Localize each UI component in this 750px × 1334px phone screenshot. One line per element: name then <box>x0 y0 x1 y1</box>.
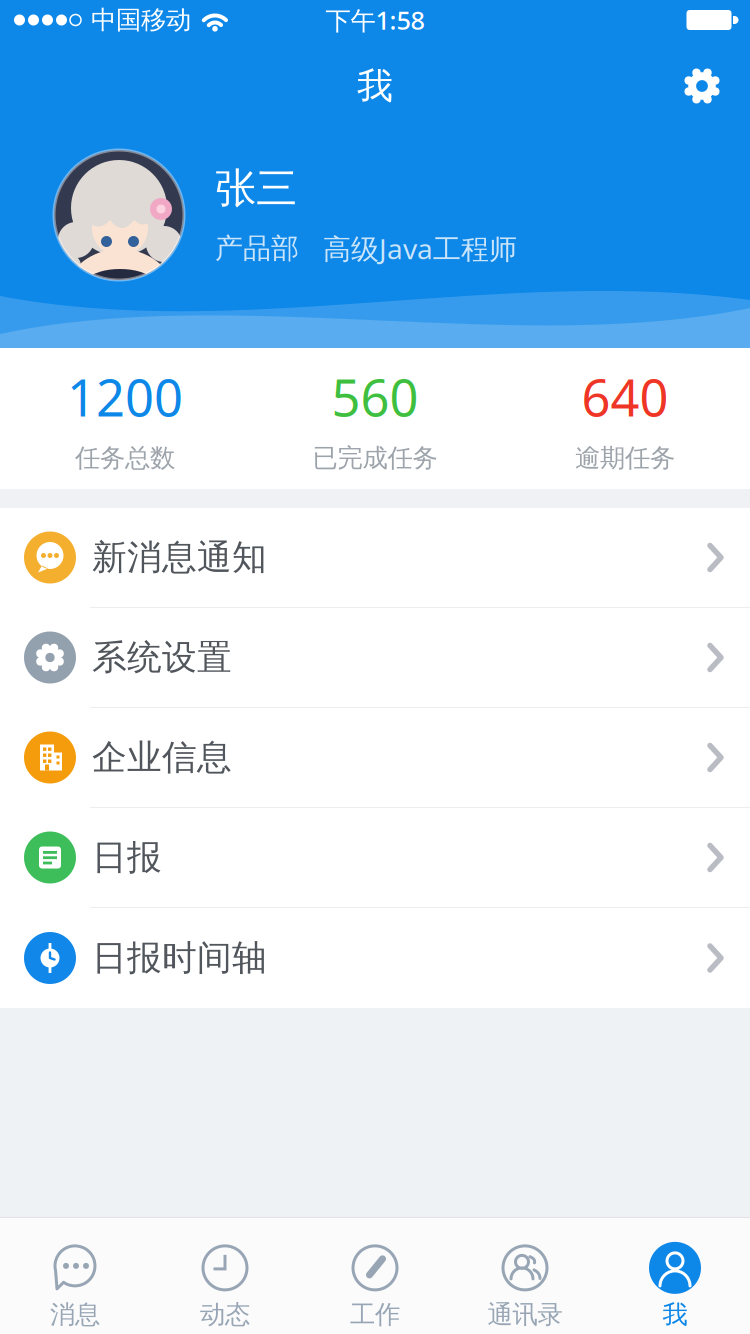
button[interactable]: 我 <box>600 1242 750 1330</box>
staticText: 中国移动 <box>91 4 191 35</box>
button[interactable]: 日报 <box>0 808 750 908</box>
staticText: 消息 <box>50 1299 100 1330</box>
staticText: 逾期任务 <box>575 443 675 474</box>
button[interactable]: 动态 <box>150 1242 300 1330</box>
staticText: 高级Java工程师 <box>323 230 517 267</box>
staticText: 新消息通知 <box>92 536 267 579</box>
staticText: 通讯录 <box>487 1299 562 1330</box>
staticText: 任务总数 <box>75 443 175 474</box>
staticText: 张三 <box>215 163 297 214</box>
button[interactable]: 设置 <box>683 67 721 105</box>
button[interactable]: 消息 <box>0 1242 150 1330</box>
staticText: 我 <box>662 1299 687 1330</box>
staticText: 系统设置 <box>92 636 232 679</box>
staticText: 640 <box>581 363 668 431</box>
button[interactable]: 系统设置 <box>0 608 750 708</box>
button[interactable]: 通讯录 <box>450 1242 600 1330</box>
staticText: 工作 <box>350 1299 400 1330</box>
staticText: 我 <box>357 64 393 108</box>
staticText: 日报 <box>92 836 162 879</box>
button[interactable]: 新消息通知 <box>0 508 750 608</box>
staticText: 产品部 <box>215 231 299 266</box>
staticText: 1200 <box>67 363 183 431</box>
staticText: 已完成任务 <box>312 443 437 474</box>
button[interactable]: 工作 <box>300 1242 450 1330</box>
staticText: 560 <box>331 363 418 431</box>
button[interactable]: 企业信息 <box>0 708 750 808</box>
button[interactable]: 日报时间轴 <box>0 908 750 1008</box>
staticText: 企业信息 <box>92 736 232 779</box>
staticText: 日报时间轴 <box>92 937 267 979</box>
staticText: 下午1:58 <box>325 3 424 37</box>
staticText: 动态 <box>200 1299 250 1330</box>
